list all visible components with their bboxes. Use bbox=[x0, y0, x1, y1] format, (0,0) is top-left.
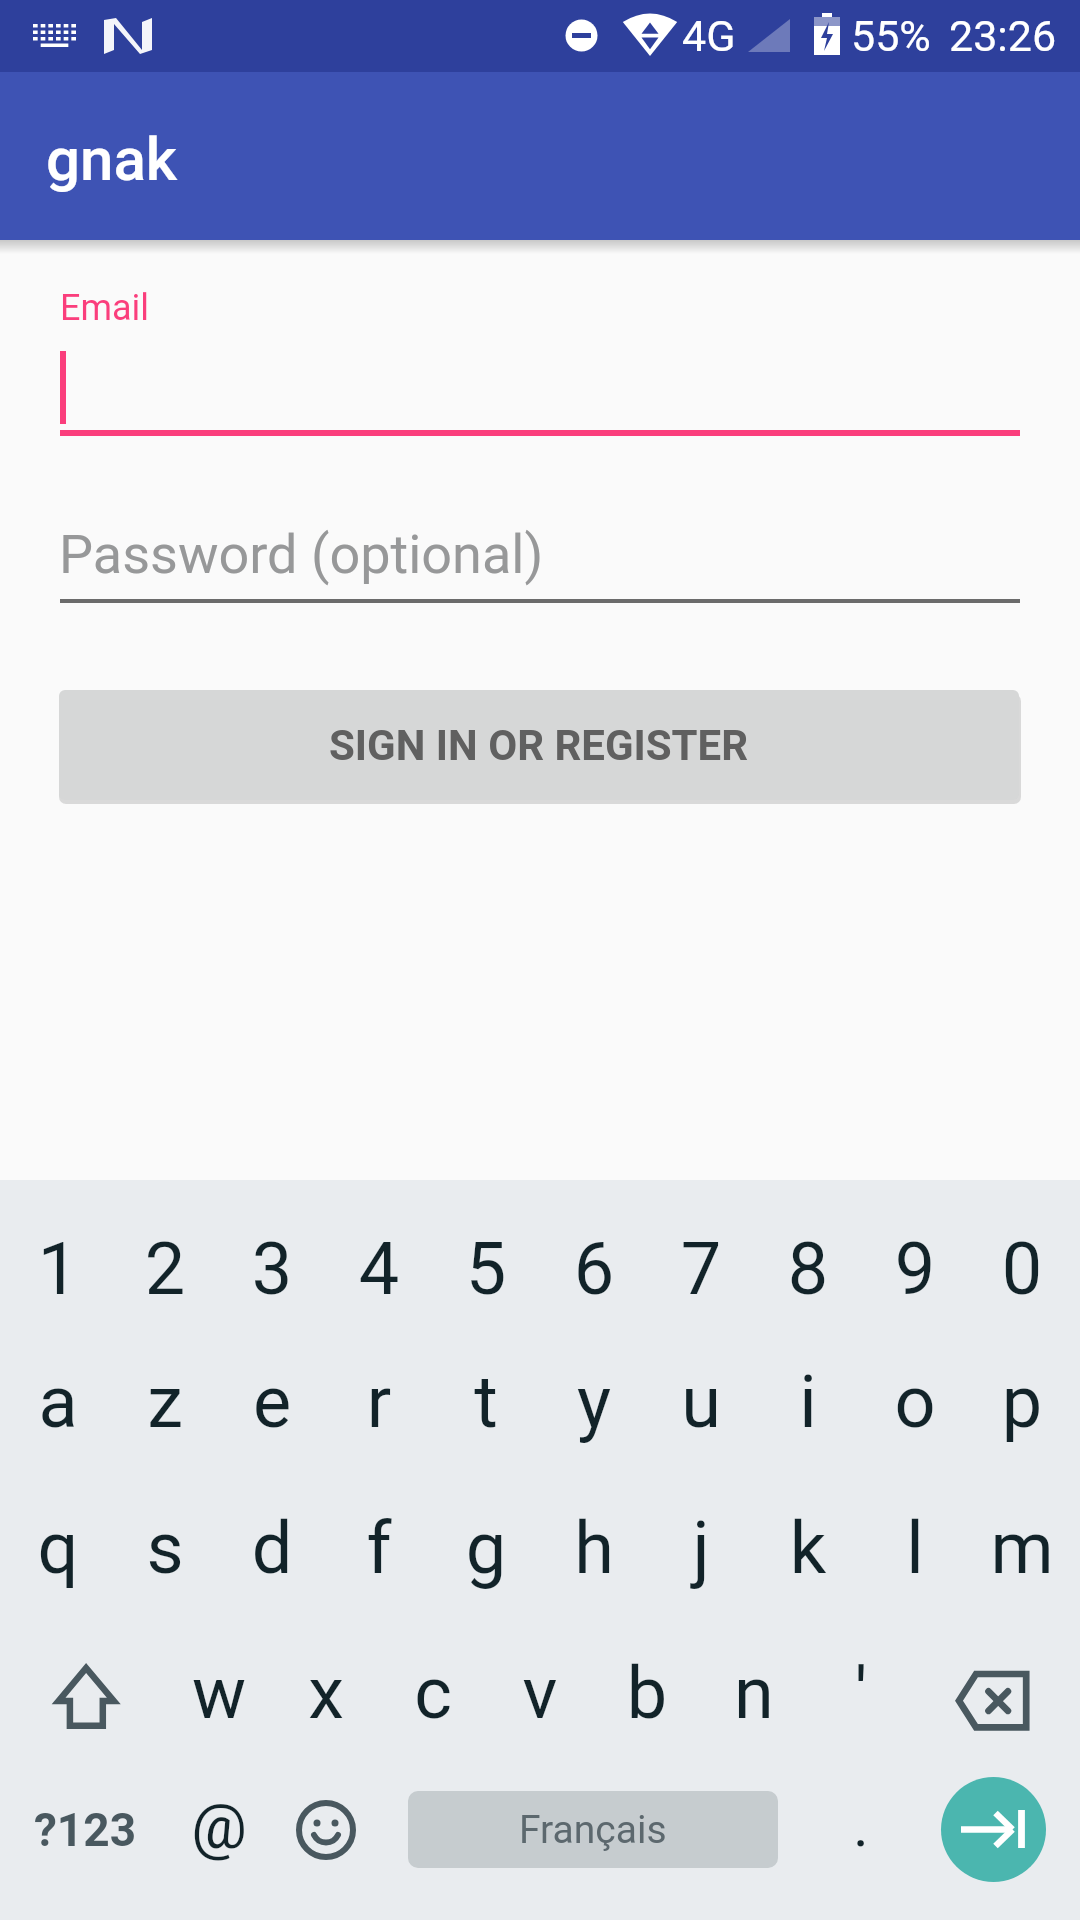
button[interactable] bbox=[647, 1195, 754, 1343]
button[interactable] bbox=[219, 1195, 326, 1343]
button[interactable] bbox=[433, 1474, 540, 1622]
staticText: p bbox=[822, 1360, 1080, 1444]
staticText: 7 bbox=[501, 1227, 901, 1311]
staticText: l bbox=[715, 1506, 1080, 1590]
button[interactable] bbox=[5, 1195, 112, 1343]
button[interactable] bbox=[808, 1621, 915, 1769]
button[interactable] bbox=[165, 1621, 272, 1769]
staticText: s bbox=[0, 1506, 365, 1590]
staticText: r bbox=[179, 1360, 579, 1444]
staticText: 1 bbox=[0, 1227, 258, 1311]
button[interactable] bbox=[219, 1474, 326, 1622]
button[interactable] bbox=[433, 1195, 540, 1343]
button[interactable] bbox=[0, 72, 1080, 240]
staticText: 9 bbox=[715, 1227, 1080, 1311]
button[interactable] bbox=[5, 1769, 166, 1920]
button[interactable] bbox=[5, 1474, 112, 1622]
button[interactable] bbox=[968, 1474, 1075, 1622]
button[interactable] bbox=[861, 1474, 968, 1622]
button[interactable] bbox=[647, 1474, 754, 1622]
staticText: @ bbox=[19, 1790, 419, 1863]
button[interactable] bbox=[326, 1474, 433, 1622]
staticText: Password (optional) bbox=[59, 523, 544, 586]
button[interactable] bbox=[861, 1328, 968, 1476]
staticText: j bbox=[501, 1506, 901, 1590]
button[interactable] bbox=[219, 1328, 326, 1476]
staticText: 23:26 bbox=[949, 11, 1057, 61]
button[interactable]: Backspace bbox=[915, 1621, 1076, 1769]
staticText: SIGN IN OR REGISTER bbox=[329, 721, 749, 770]
button[interactable] bbox=[754, 1195, 861, 1343]
button[interactable] bbox=[326, 1328, 433, 1476]
staticText: y bbox=[394, 1360, 794, 1444]
staticText: m bbox=[822, 1506, 1080, 1590]
button[interactable] bbox=[60, 270, 1020, 436]
button[interactable] bbox=[540, 1328, 647, 1476]
staticText: 2 bbox=[0, 1227, 365, 1311]
staticText: g bbox=[286, 1506, 686, 1590]
staticText: 6 bbox=[394, 1227, 794, 1311]
staticText: h bbox=[394, 1506, 794, 1590]
button[interactable] bbox=[754, 1474, 861, 1622]
button[interactable] bbox=[5, 1328, 112, 1476]
staticText: a bbox=[0, 1360, 258, 1444]
staticText: v bbox=[340, 1651, 740, 1735]
staticText: 4 bbox=[179, 1227, 579, 1311]
staticText: x bbox=[126, 1651, 526, 1735]
button[interactable] bbox=[486, 1621, 593, 1769]
button[interactable] bbox=[272, 1621, 379, 1769]
button[interactable] bbox=[433, 1328, 540, 1476]
button[interactable] bbox=[165, 1755, 272, 1906]
button[interactable] bbox=[647, 1328, 754, 1476]
staticText: z bbox=[0, 1360, 365, 1444]
staticText: 55% bbox=[851, 11, 931, 61]
button[interactable] bbox=[112, 1474, 219, 1622]
staticText: 3 bbox=[72, 1227, 472, 1311]
staticText: t bbox=[286, 1360, 686, 1444]
staticText: c bbox=[233, 1651, 633, 1735]
button[interactable] bbox=[754, 1328, 861, 1476]
button[interactable]: Enter bbox=[915, 1769, 1076, 1920]
button[interactable] bbox=[540, 1195, 647, 1343]
staticText: Français bbox=[519, 1807, 667, 1853]
staticText: Email bbox=[60, 287, 150, 329]
button[interactable] bbox=[112, 1328, 219, 1476]
staticText: u bbox=[501, 1360, 901, 1444]
button[interactable] bbox=[861, 1195, 968, 1343]
button[interactable] bbox=[540, 1474, 647, 1622]
staticText: d bbox=[72, 1506, 472, 1590]
button[interactable] bbox=[968, 1195, 1075, 1343]
staticText: ?123 bbox=[0, 1803, 285, 1857]
staticText: 4G bbox=[682, 11, 736, 61]
button[interactable] bbox=[968, 1328, 1075, 1476]
staticText: 5 bbox=[286, 1227, 686, 1311]
staticText: gnak bbox=[46, 124, 178, 194]
button[interactable]: SIGN IN OR REGISTER bbox=[59, 690, 1019, 800]
button[interactable] bbox=[594, 1621, 701, 1769]
staticText: i bbox=[608, 1360, 1008, 1444]
staticText: w bbox=[19, 1651, 419, 1735]
staticText: . bbox=[661, 1790, 1061, 1860]
staticText: b bbox=[447, 1651, 847, 1735]
button[interactable] bbox=[326, 1195, 433, 1343]
staticText: 8 bbox=[608, 1227, 1008, 1311]
staticText: n bbox=[554, 1651, 954, 1735]
button[interactable] bbox=[808, 1755, 915, 1906]
button[interactable]: Emoji bbox=[272, 1769, 379, 1920]
staticText: 0 bbox=[822, 1227, 1080, 1311]
button[interactable] bbox=[379, 1621, 486, 1769]
staticText: f bbox=[179, 1506, 579, 1590]
staticText: e bbox=[72, 1360, 472, 1444]
button[interactable]: Français bbox=[408, 1791, 778, 1868]
button[interactable] bbox=[112, 1195, 219, 1343]
button[interactable] bbox=[701, 1621, 808, 1769]
staticText: ' bbox=[661, 1651, 1061, 1735]
staticText: k bbox=[608, 1506, 1008, 1590]
button[interactable] bbox=[60, 500, 1020, 602]
button[interactable]: Shift bbox=[5, 1621, 166, 1769]
staticText: q bbox=[0, 1506, 258, 1590]
staticText: o bbox=[715, 1360, 1080, 1444]
